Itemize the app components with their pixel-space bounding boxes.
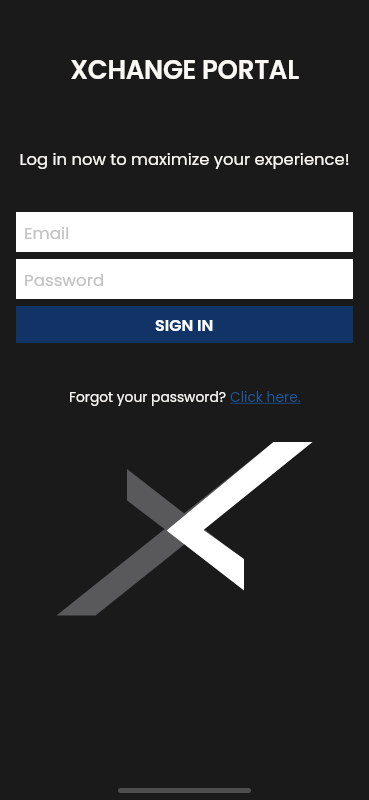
button[interactable]: SIGN IN	[16, 306, 353, 343]
button[interactable]: Email	[16, 212, 353, 252]
staticText: Email	[24, 221, 70, 244]
staticText: Password	[24, 268, 105, 291]
other: Xchange logo	[0, 0, 369, 800]
staticText: Forgot your password?	[69, 388, 230, 407]
button[interactable]: Click here.	[230, 388, 301, 407]
button[interactable]: Password	[16, 259, 353, 299]
staticText: SIGN IN	[155, 314, 214, 336]
staticText: XCHANGE PORTAL	[0, 52, 369, 88]
staticText: Log in now to maximize your experience!	[0, 148, 369, 171]
